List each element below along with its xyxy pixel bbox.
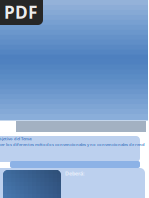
button[interactable]: PDF: [0, 0, 43, 25]
staticText: cer los diferentes métodos convencionale…: [0, 142, 145, 147]
staticText: PDF: [4, 0, 38, 23]
staticText: Deberá:: [65, 170, 84, 177]
staticText: bjetivo del Tema:: [0, 136, 32, 141]
